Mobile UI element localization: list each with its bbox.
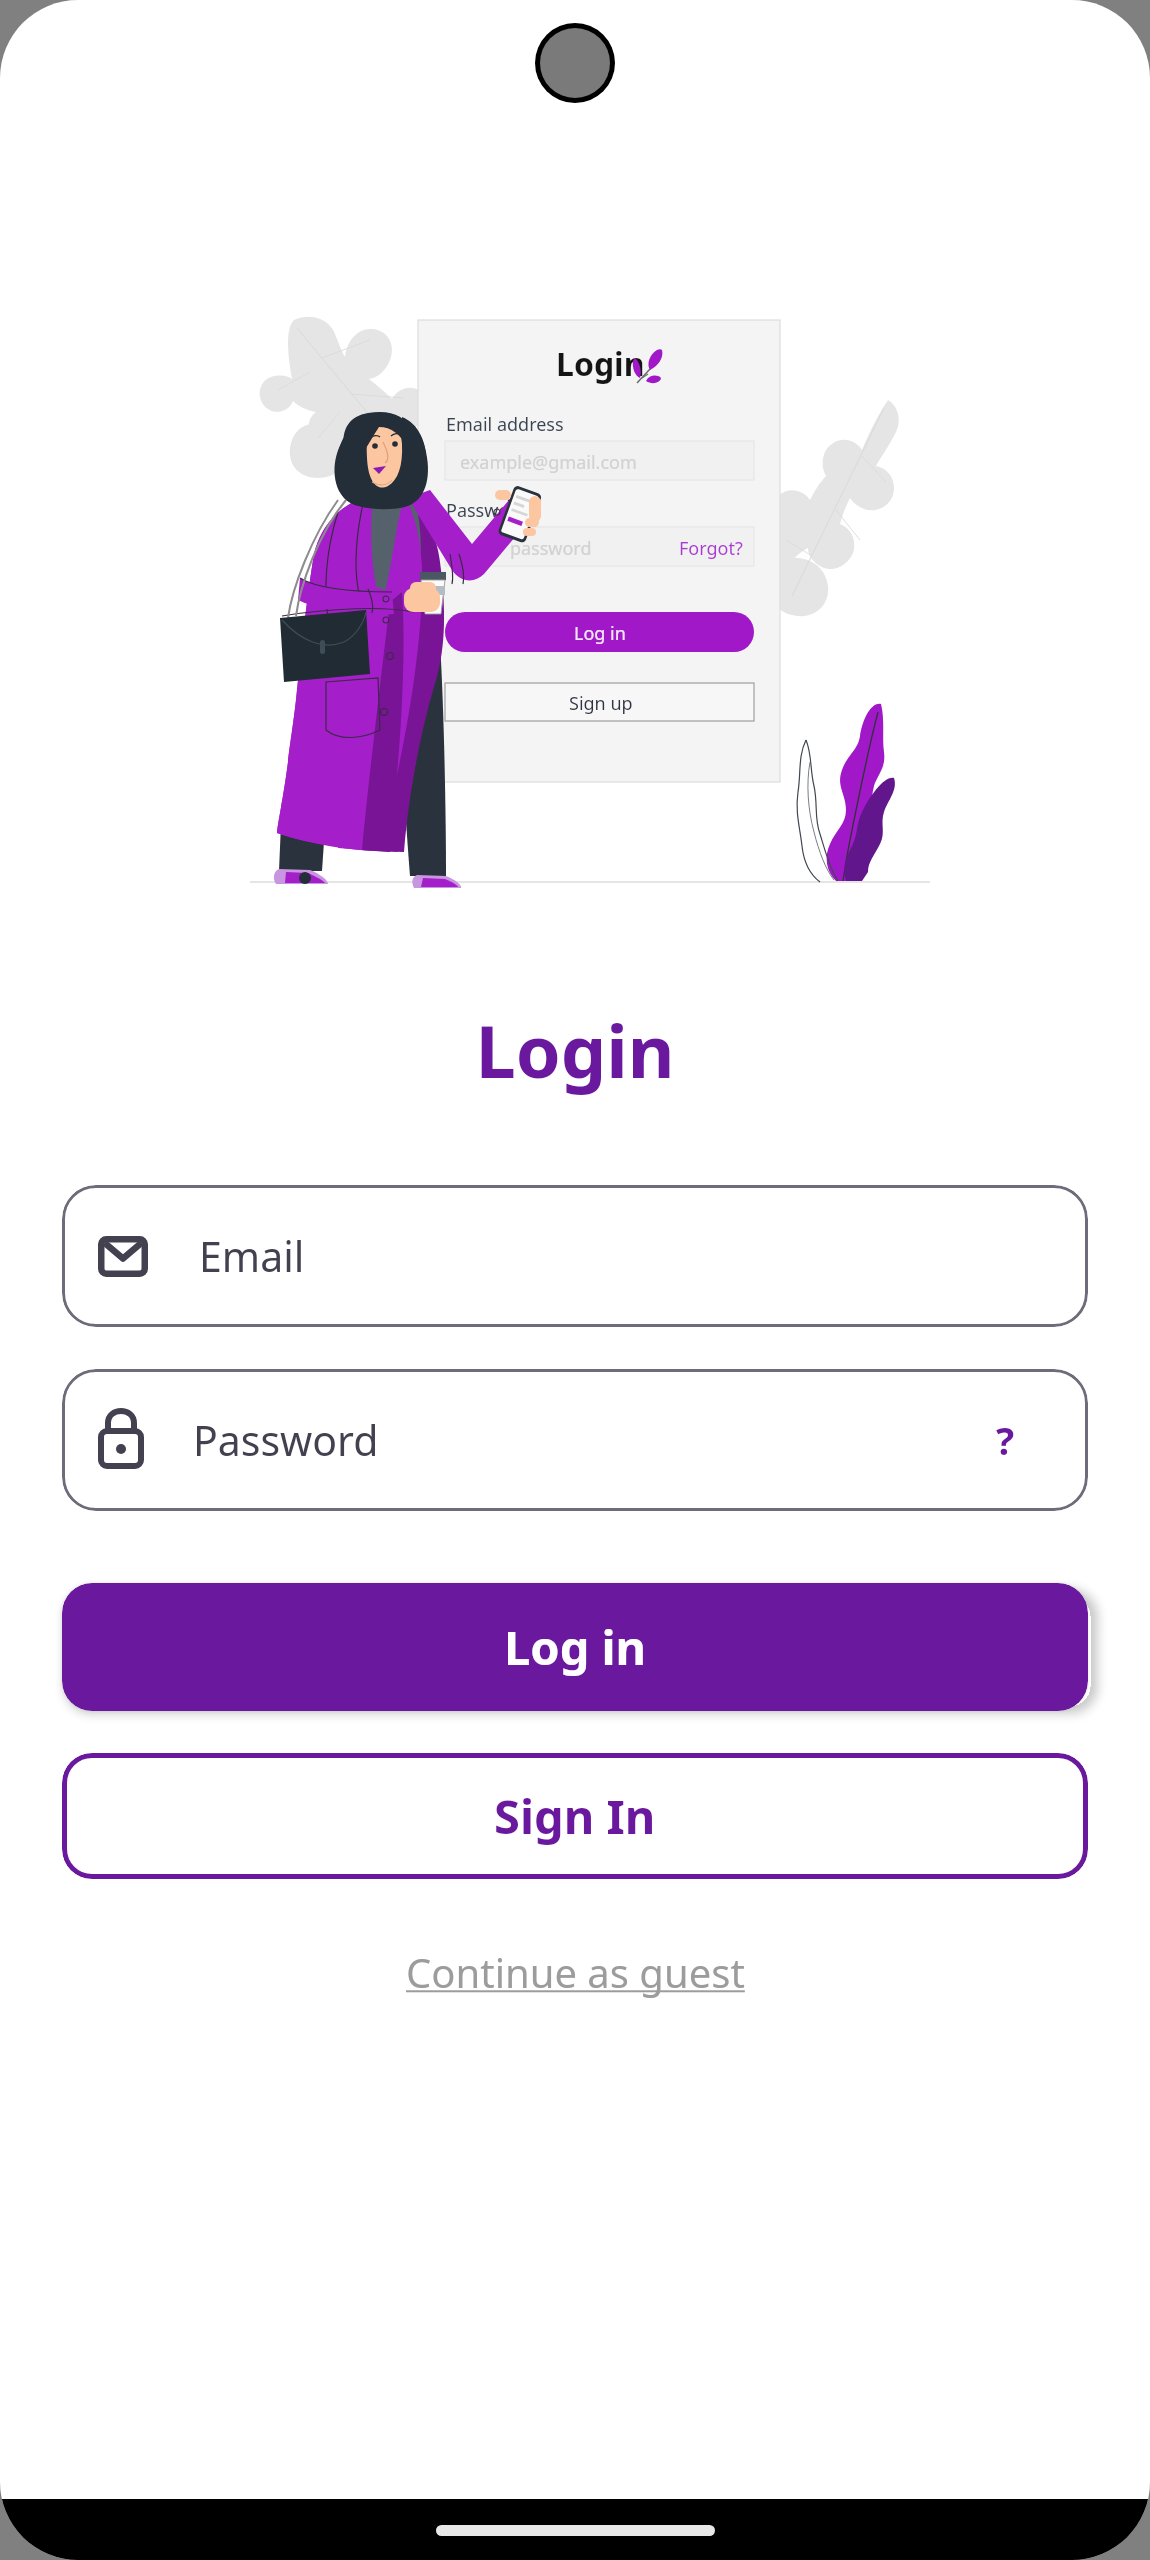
button[interactable]: Password help bbox=[996, 1414, 1015, 1466]
button[interactable]: Sign In bbox=[62, 1753, 1088, 1879]
staticText: Log in bbox=[504, 1615, 647, 1679]
button[interactable]: Log in bbox=[62, 1583, 1088, 1711]
button[interactable]: Email bbox=[62, 1185, 1088, 1327]
staticText: ? bbox=[996, 1414, 1015, 1466]
staticText: Email bbox=[199, 1228, 305, 1284]
staticText: Sign In bbox=[494, 1784, 656, 1848]
button[interactable]: Continue as guest bbox=[406, 1945, 745, 1999]
staticText: Login bbox=[0, 1001, 1150, 1099]
button[interactable]: Password bbox=[62, 1369, 1088, 1511]
staticText: Password bbox=[193, 1412, 379, 1468]
